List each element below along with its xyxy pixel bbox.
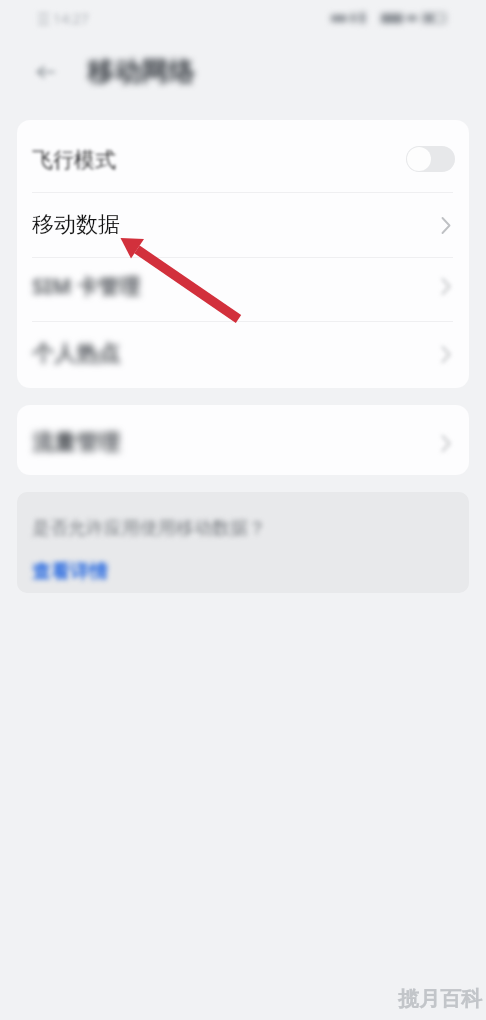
staticText: 查看详情	[32, 560, 108, 584]
button[interactable]: 个人热点	[17, 322, 469, 388]
button[interactable]: 查看详情	[32, 560, 108, 584]
staticText: 14:27	[53, 9, 89, 28]
button[interactable]: Back	[30, 57, 60, 87]
staticText: 是否允许应用使用移动数据？	[32, 517, 266, 540]
staticText: SIM 卡管理	[32, 272, 141, 301]
button[interactable]: SIM 卡管理	[17, 258, 469, 321]
button[interactable]: 移动数据	[17, 193, 469, 257]
staticText: 个人热点	[32, 340, 120, 368]
staticText: 飞行模式	[32, 147, 116, 173]
button[interactable]: 流量管理	[17, 405, 469, 475]
staticText: 移动网络	[87, 55, 195, 89]
staticText: 移动数据	[32, 211, 120, 239]
staticText: 流量管理	[32, 429, 120, 457]
button[interactable]: 飞行模式	[17, 120, 469, 192]
staticText: 揽月百科	[398, 986, 482, 1012]
